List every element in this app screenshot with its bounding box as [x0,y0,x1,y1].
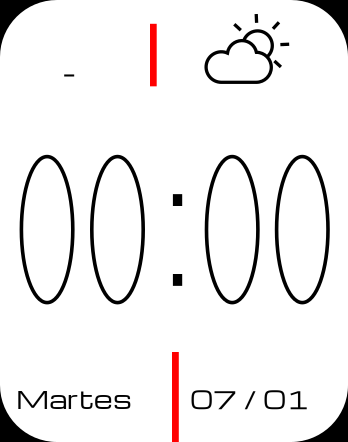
staticText: Martes [16,381,132,415]
button[interactable]: 07 / 01 [0,0,119,35]
staticText: - [62,52,75,90]
staticText: 07 / 01 [190,381,309,416]
button[interactable]: Martes [0,0,116,34]
button[interactable]: Temperature [0,0,40,26]
button[interactable]: Weather: partly cloudy [0,0,348,442]
